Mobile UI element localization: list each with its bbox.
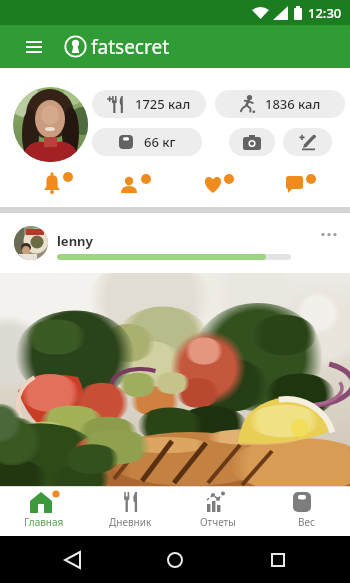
button[interactable]: Отчеты <box>174 487 262 536</box>
button[interactable] <box>285 172 319 200</box>
button[interactable] <box>8 25 60 68</box>
button[interactable] <box>258 540 298 580</box>
button[interactable] <box>42 170 76 198</box>
staticText: 12:30 <box>308 4 342 22</box>
button[interactable] <box>13 87 88 162</box>
staticText: Главная <box>24 515 64 529</box>
staticText: Вес <box>298 515 315 529</box>
button[interactable] <box>229 128 275 156</box>
staticText: 1725 кал <box>135 95 191 113</box>
button[interactable] <box>283 128 332 156</box>
button[interactable]: Главная <box>0 487 87 536</box>
staticText: fatsecret <box>91 34 170 60</box>
button[interactable]: 1836 кал <box>215 90 345 118</box>
button[interactable]: 66 кг <box>92 128 202 156</box>
button[interactable]: 1725 кал <box>92 90 206 118</box>
staticText: Отчеты <box>200 515 236 529</box>
button[interactable] <box>155 540 195 580</box>
button[interactable] <box>52 540 92 580</box>
staticText: 66 кг <box>144 133 176 151</box>
button[interactable] <box>0 273 350 486</box>
staticText: Дневник <box>109 515 152 529</box>
staticText: 1836 кал <box>265 95 321 113</box>
button[interactable]: lenny <box>0 213 350 273</box>
button[interactable] <box>120 172 154 200</box>
button[interactable] <box>203 172 237 200</box>
staticText: lenny <box>57 232 93 250</box>
button[interactable]: Вес <box>262 487 350 536</box>
button[interactable]: Дневник <box>87 487 174 536</box>
